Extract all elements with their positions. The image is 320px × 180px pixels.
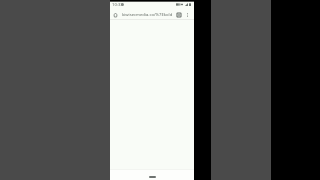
button[interactable]: Home — [111, 11, 119, 19]
button[interactable]: kiwisecmedia.co/%7Ekold — [120, 11, 174, 19]
staticText: kiwisecmedia.co/%7Ekold — [122, 12, 173, 18]
staticText: 10:33 — [112, 2, 123, 8]
button[interactable]: More options — [184, 11, 191, 18]
button[interactable]: Page info — [175, 11, 183, 19]
